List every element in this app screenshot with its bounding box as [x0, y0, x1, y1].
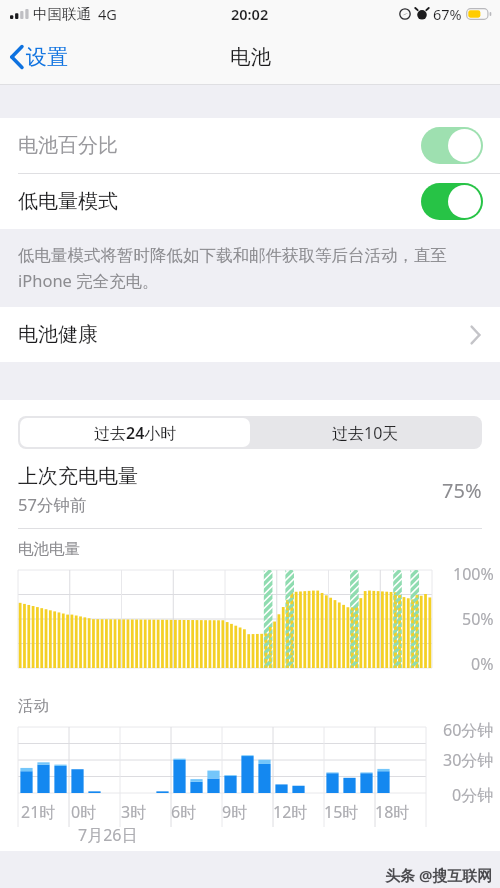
- button[interactable]: 过去10天: [250, 418, 480, 447]
- staticText: 50%: [462, 608, 494, 630]
- staticText: 活动: [18, 696, 49, 716]
- other: Back: [9, 44, 24, 70]
- staticText: 电池: [230, 44, 271, 70]
- staticText: 100%: [453, 563, 494, 585]
- staticText: 设置: [26, 44, 68, 70]
- staticText: 75%: [442, 477, 482, 504]
- staticText: 电池健康: [18, 322, 98, 347]
- staticText: 4G: [98, 4, 117, 24]
- staticText: 低电量模式将暂时降低如下载和邮件获取等后台活动，直至 iPhone 完全充电。: [18, 243, 474, 292]
- button[interactable]: 电池百分比: [421, 127, 483, 164]
- staticText: 0分钟: [452, 784, 494, 806]
- staticText: 上次充电电量: [18, 464, 138, 489]
- button[interactable]: Back: [9, 39, 78, 75]
- staticText: 过去24小时: [94, 422, 177, 444]
- staticText: 20:02: [231, 4, 269, 24]
- staticText: 7月26日: [78, 824, 138, 846]
- button[interactable]: 电池百分比: [0, 118, 500, 173]
- button[interactable]: 电池健康: [0, 307, 500, 362]
- staticText: 18时: [375, 801, 410, 823]
- staticText: 低电量模式: [18, 189, 118, 214]
- staticText: 12时: [273, 801, 308, 823]
- staticText: 头条 @搜互联网: [385, 865, 493, 885]
- staticText: 21时: [21, 801, 56, 823]
- button[interactable]: 低电量模式: [421, 183, 483, 220]
- staticText: 67%: [433, 4, 462, 24]
- button[interactable]: 过去24小时: [20, 418, 250, 447]
- staticText: 60分钟: [443, 719, 494, 741]
- staticText: 30分钟: [443, 749, 494, 771]
- staticText: 0%: [471, 653, 494, 675]
- staticText: 中国联通: [33, 5, 91, 23]
- staticText: 15时: [324, 801, 359, 823]
- staticText: 3时: [121, 801, 147, 823]
- staticText: 57分钟前: [18, 493, 87, 516]
- staticText: 0时: [71, 801, 97, 823]
- staticText: 过去10天: [332, 422, 399, 444]
- staticText: 电池百分比: [18, 133, 118, 158]
- staticText: 6时: [171, 801, 197, 823]
- button[interactable]: 低电量模式: [0, 174, 500, 229]
- staticText: 电池电量: [18, 539, 80, 559]
- staticText: 9时: [222, 801, 248, 823]
